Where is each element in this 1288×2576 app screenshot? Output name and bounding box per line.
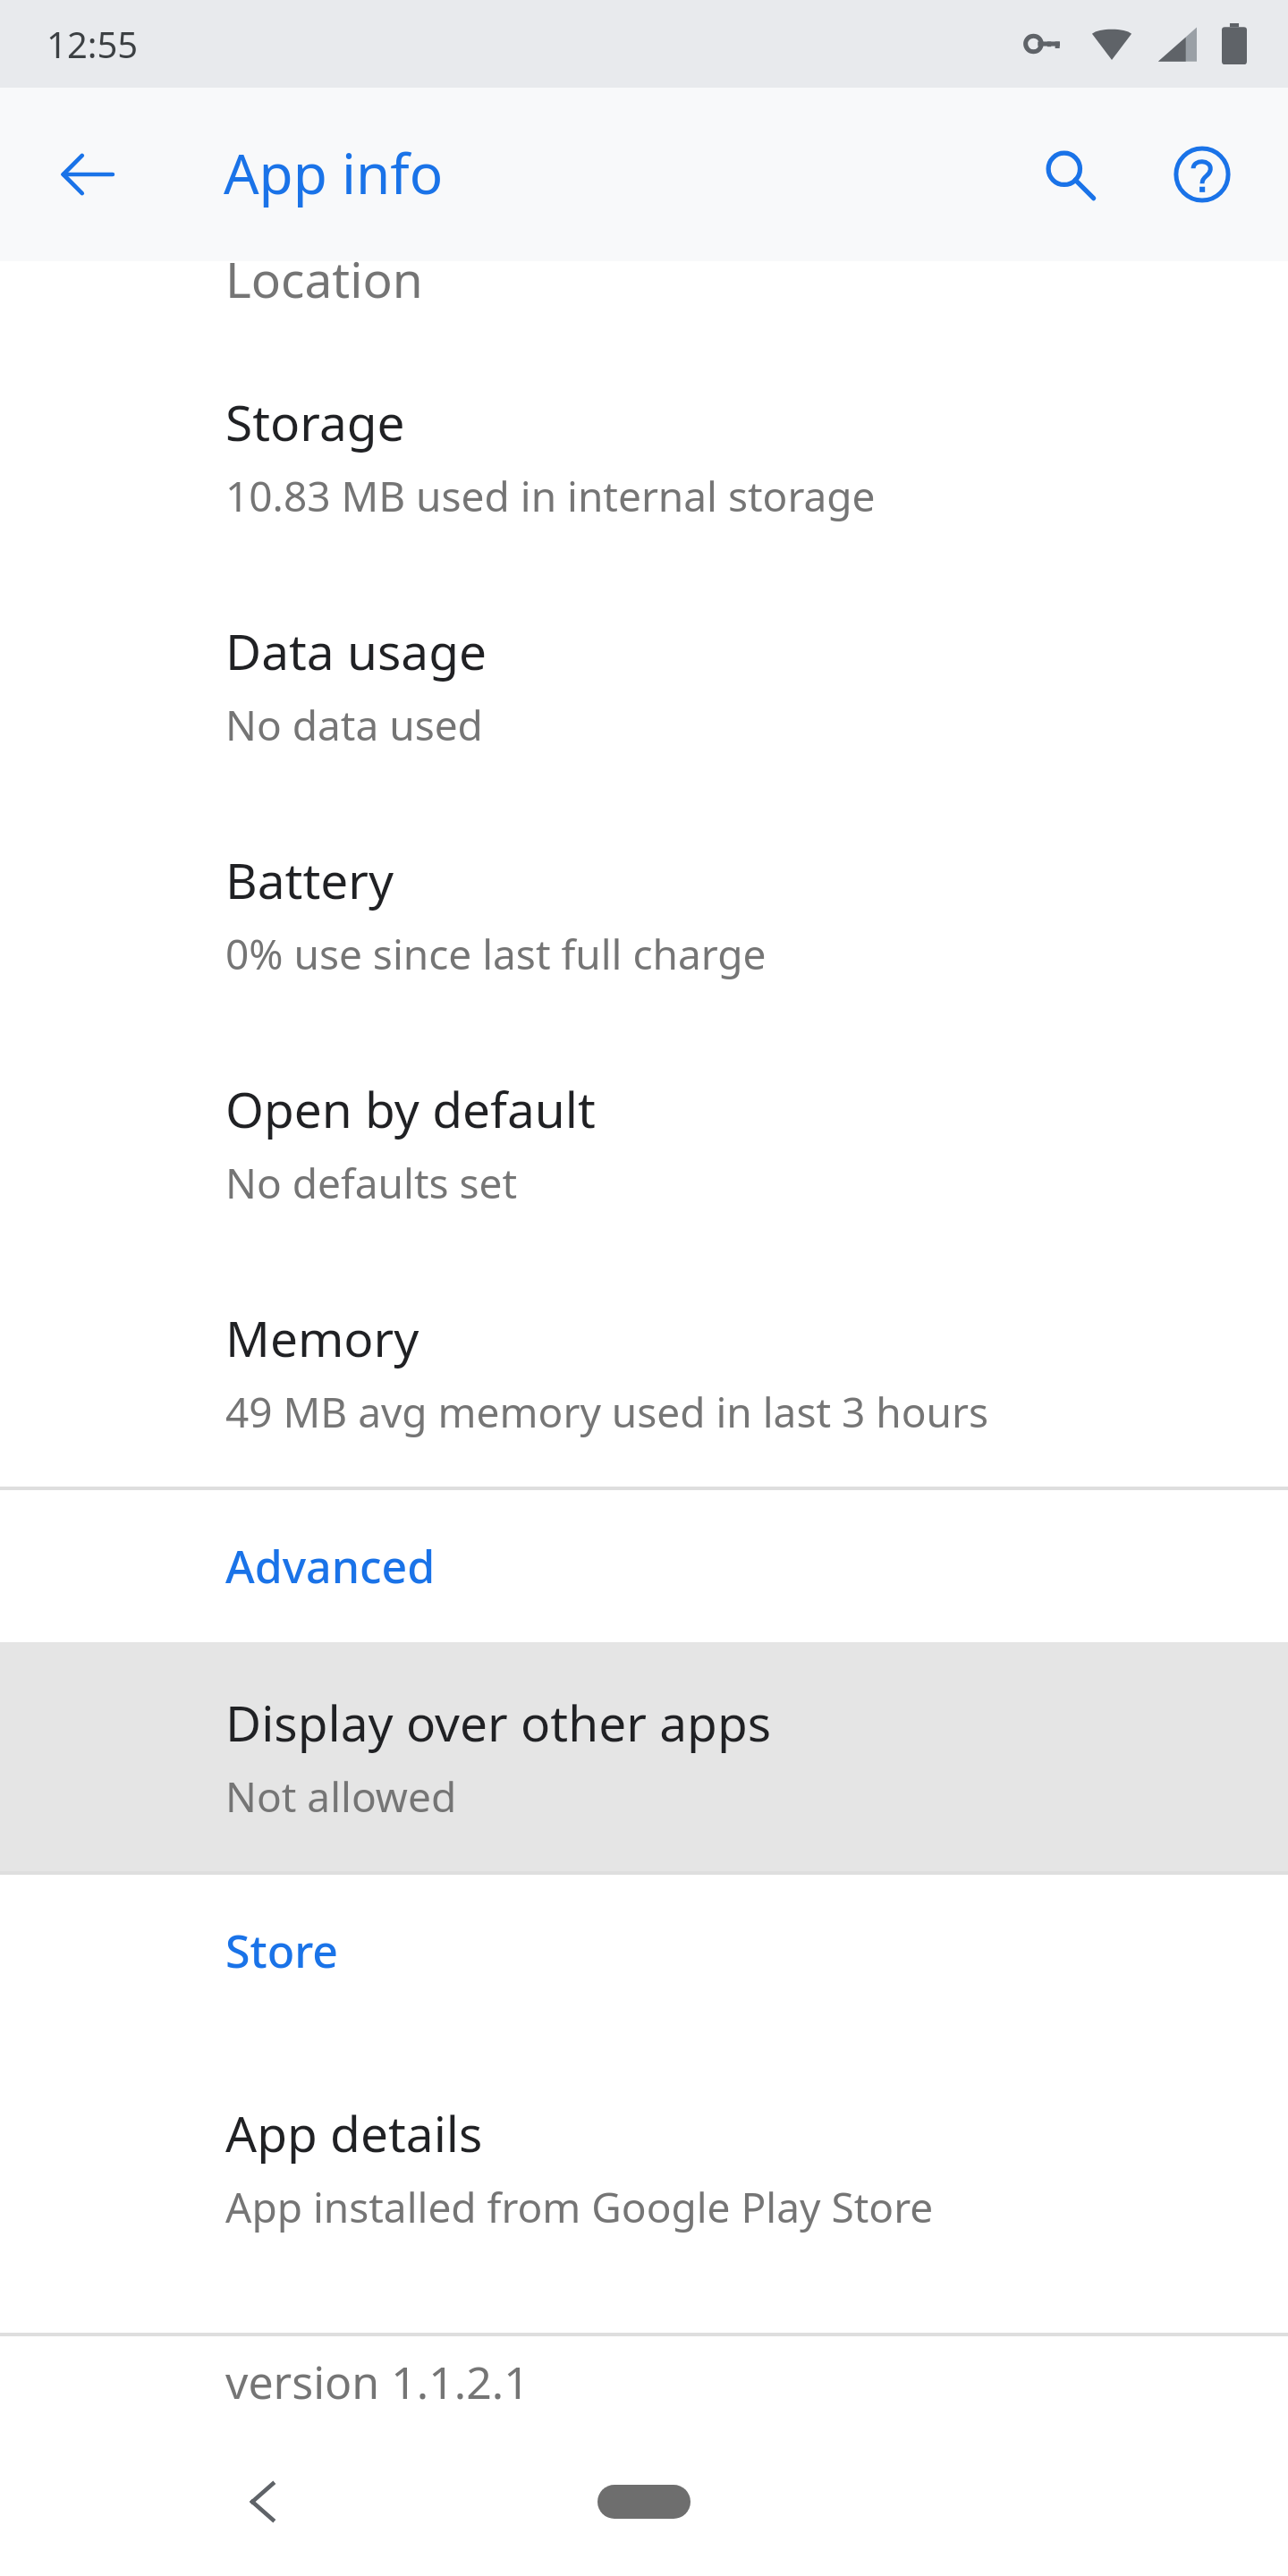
- button[interactable]: Advanced: [0, 1490, 1288, 1642]
- staticText: Battery: [225, 846, 394, 913]
- staticText: 49 MB avg memory used in last 3 hours: [225, 1384, 988, 1440]
- button[interactable]: App details: [0, 2027, 1288, 2308]
- button[interactable]: Home: [568, 2453, 720, 2551]
- button[interactable]: Store: [0, 1875, 1288, 2027]
- button[interactable]: Memory: [0, 1258, 1288, 1487]
- staticText: Location: [225, 245, 423, 312]
- button[interactable]: Back: [48, 135, 127, 214]
- button[interactable]: Search: [1027, 131, 1113, 217]
- staticText: Display over other apps: [225, 1689, 772, 1756]
- staticText: Memory: [225, 1304, 419, 1371]
- staticText: 12:55: [47, 20, 139, 68]
- staticText: App installed from Google Play Store: [225, 2179, 934, 2235]
- staticText: Store: [225, 1920, 339, 1981]
- button[interactable]: Open by default: [0, 1029, 1288, 1258]
- staticText: Not allowed: [225, 1768, 457, 1825]
- button[interactable]: Storage: [0, 342, 1288, 571]
- button[interactable]: Location: [0, 261, 1288, 342]
- staticText: 10.83 MB used in internal storage: [225, 468, 876, 524]
- staticText: App info: [224, 135, 444, 210]
- button[interactable]: Data usage: [0, 571, 1288, 800]
- button[interactable]: Battery: [0, 800, 1288, 1029]
- staticText: Open by default: [225, 1075, 596, 1142]
- staticText: Data usage: [225, 617, 487, 684]
- button[interactable]: Back: [215, 2453, 313, 2551]
- staticText: App details: [225, 2099, 483, 2166]
- button[interactable]: Help: [1159, 131, 1245, 217]
- staticText: No data used: [225, 697, 483, 753]
- staticText: Storage: [225, 388, 405, 455]
- staticText: 0% use since last full charge: [225, 926, 767, 982]
- staticText: version 1.1.2.1: [225, 2351, 530, 2412]
- button[interactable]: Display over other apps: [0, 1642, 1288, 1871]
- staticText: Advanced: [225, 1536, 436, 1597]
- staticText: No defaults set: [225, 1155, 518, 1211]
